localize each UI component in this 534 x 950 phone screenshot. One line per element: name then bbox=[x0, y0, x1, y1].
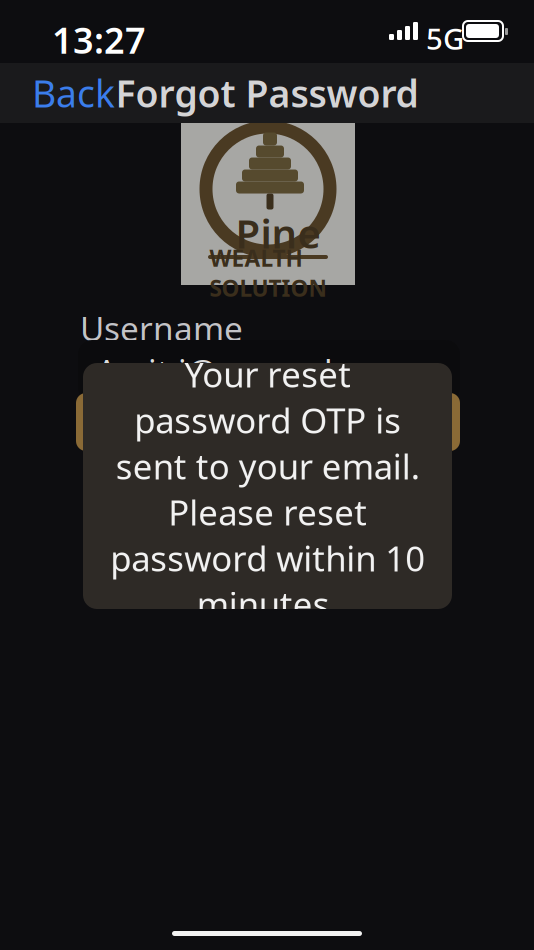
staticText: 5G bbox=[426, 19, 464, 58]
staticText: Username bbox=[80, 306, 243, 350]
staticText: 13:27 bbox=[52, 16, 146, 64]
staticText: Back bbox=[32, 68, 115, 118]
button[interactable]: Submit bbox=[76, 393, 460, 451]
staticText: Forgot Password bbox=[102, 290, 433, 343]
staticText: Your reset password OTP is sent to your … bbox=[110, 351, 425, 627]
staticText: Pine bbox=[235, 206, 320, 259]
staticText: Forgot Password bbox=[115, 68, 418, 118]
staticText: Amit.i@example.com bbox=[96, 349, 428, 393]
staticText: WEALTH SOLUTION bbox=[209, 243, 326, 303]
staticText: Submit bbox=[208, 399, 328, 445]
button[interactable]: Back bbox=[22, 60, 125, 126]
